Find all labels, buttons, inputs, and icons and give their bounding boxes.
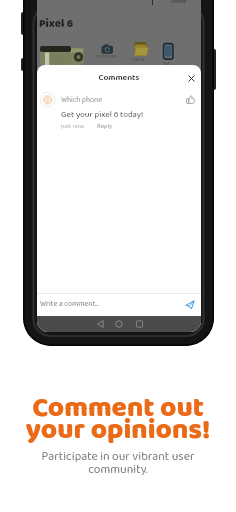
button[interactable]	[130, 316, 148, 332]
staticText: Write a comment...	[40, 298, 99, 310]
button[interactable]	[187, 74, 196, 83]
staticText: Comments	[37, 71, 201, 85]
staticText: 128 GB	[132, 56, 145, 63]
staticText: 50.0/3.0 MB	[95, 53, 116, 60]
button[interactable]: Share	[171, 0, 187, 6]
staticText: just now	[61, 121, 85, 131]
staticText: 6.4"	[164, 60, 171, 67]
button[interactable]: Reply	[97, 121, 113, 131]
button[interactable]	[110, 316, 128, 332]
button[interactable]	[185, 300, 195, 310]
button[interactable]	[186, 95, 195, 104]
staticText: Comment out your opinions!	[0, 386, 236, 453]
staticText: Which phone	[61, 94, 102, 106]
staticText: Pixel 6	[39, 15, 74, 33]
button[interactable]	[92, 316, 110, 332]
staticText: Participate in our vibrant user communit…	[0, 447, 236, 479]
button[interactable]: Write a comment...	[37, 294, 201, 316]
staticText: Get your pixel 6 today!	[61, 108, 144, 122]
